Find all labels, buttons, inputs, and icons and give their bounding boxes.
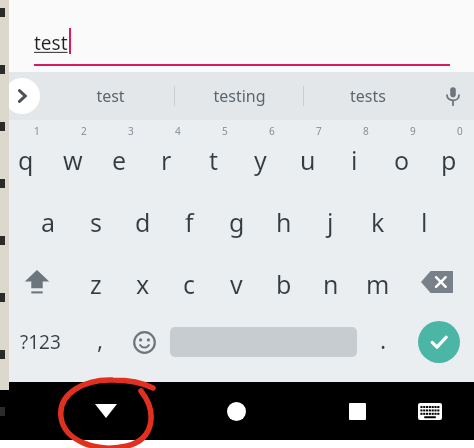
button[interactable]: d [119, 186, 166, 248]
button[interactable]: Recent apps [333, 387, 381, 435]
button[interactable]: j [307, 186, 354, 248]
staticText: 1 [34, 124, 40, 138]
button[interactable]: b [260, 248, 307, 310]
staticText: tests [350, 85, 386, 107]
button[interactable]: s [72, 186, 119, 248]
button[interactable]: testing [175, 72, 303, 120]
button[interactable]: 8 [331, 124, 378, 186]
staticText: s [90, 205, 102, 239]
staticText: . [380, 324, 387, 355]
staticText: c [183, 267, 196, 301]
staticText: p [441, 143, 457, 177]
button[interactable]: Home [212, 387, 260, 435]
staticText: b [276, 267, 292, 301]
button[interactable]: Shift [2, 248, 72, 310]
staticText: g [229, 205, 245, 239]
button[interactable]: ?123 [2, 310, 78, 374]
staticText: u [300, 143, 316, 177]
button[interactable]: z [72, 248, 119, 310]
button[interactable]: test [34, 30, 450, 56]
staticText: d [135, 205, 151, 239]
button[interactable]: h [260, 186, 307, 248]
button[interactable]: . [361, 310, 405, 374]
button[interactable]: Switch keyboard [408, 389, 452, 433]
button[interactable]: c [166, 248, 213, 310]
button[interactable]: test [46, 72, 174, 120]
button[interactable]: l [401, 186, 448, 248]
button[interactable]: 3 [96, 124, 143, 186]
button[interactable]: 7 [284, 124, 331, 186]
staticText: n [323, 267, 339, 301]
button[interactable]: Expand suggestions [4, 78, 40, 114]
button[interactable]: 2 [49, 124, 96, 186]
staticText: a [41, 205, 56, 239]
button[interactable]: Voice input [432, 72, 474, 120]
staticText: 0 [457, 124, 463, 138]
staticText: 6 [269, 124, 275, 138]
staticText: 2 [81, 124, 87, 138]
staticText: m [366, 267, 390, 301]
staticText: test [34, 30, 68, 56]
staticText: 7 [316, 124, 322, 138]
button[interactable]: Backspace [401, 248, 472, 310]
staticText: v [230, 267, 243, 301]
staticText: 4 [175, 124, 181, 138]
button[interactable]: , [78, 310, 122, 374]
staticText: testing [213, 85, 266, 107]
button[interactable]: g [213, 186, 260, 248]
staticText: , [97, 324, 104, 355]
button[interactable]: tests [304, 72, 432, 120]
staticText: x [136, 267, 150, 301]
staticText: l [421, 205, 428, 239]
staticText: 3 [128, 124, 134, 138]
button[interactable]: 1 [2, 124, 49, 186]
staticText: j [327, 205, 334, 239]
button[interactable]: n [307, 248, 354, 310]
button[interactable]: 6 [237, 124, 284, 186]
staticText: o [394, 143, 410, 177]
button[interactable]: Enter [405, 310, 472, 374]
button[interactable]: a [25, 186, 72, 248]
button[interactable]: m [354, 248, 401, 310]
staticText: i [351, 143, 358, 177]
button[interactable]: 0 [425, 124, 472, 186]
staticText: 9 [410, 124, 416, 138]
staticText: 5 [222, 124, 228, 138]
staticText: q [18, 143, 34, 177]
staticText: w [63, 143, 83, 177]
staticText: test [96, 85, 125, 107]
button[interactable]: v [213, 248, 260, 310]
staticText: y [254, 143, 267, 177]
button[interactable]: 5 [190, 124, 237, 186]
staticText: t [209, 143, 219, 177]
button[interactable]: 4 [143, 124, 190, 186]
staticText: 8 [363, 124, 369, 138]
staticText: k [371, 205, 385, 239]
staticText: r [161, 143, 172, 177]
staticText: ?123 [20, 329, 61, 355]
button[interactable]: Emoji [122, 310, 166, 374]
staticText: h [276, 205, 292, 239]
button[interactable]: k [354, 186, 401, 248]
staticText: f [185, 205, 194, 239]
staticText: e [112, 143, 127, 177]
button[interactable]: f [166, 186, 213, 248]
staticText: z [90, 267, 102, 301]
button[interactable]: Hide keyboard [82, 387, 130, 435]
button[interactable]: 9 [378, 124, 425, 186]
button[interactable]: x [119, 248, 166, 310]
